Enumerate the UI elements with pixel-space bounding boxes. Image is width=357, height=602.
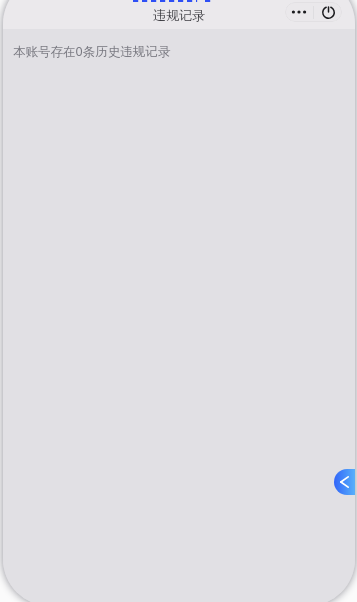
staticText: 本账号存在0条历史违规记录: [13, 43, 171, 60]
button[interactable]: Back: [334, 469, 355, 495]
button[interactable]: Close: [314, 2, 342, 22]
staticText: 违规记录: [153, 7, 205, 23]
button[interactable]: More options: [285, 2, 313, 22]
